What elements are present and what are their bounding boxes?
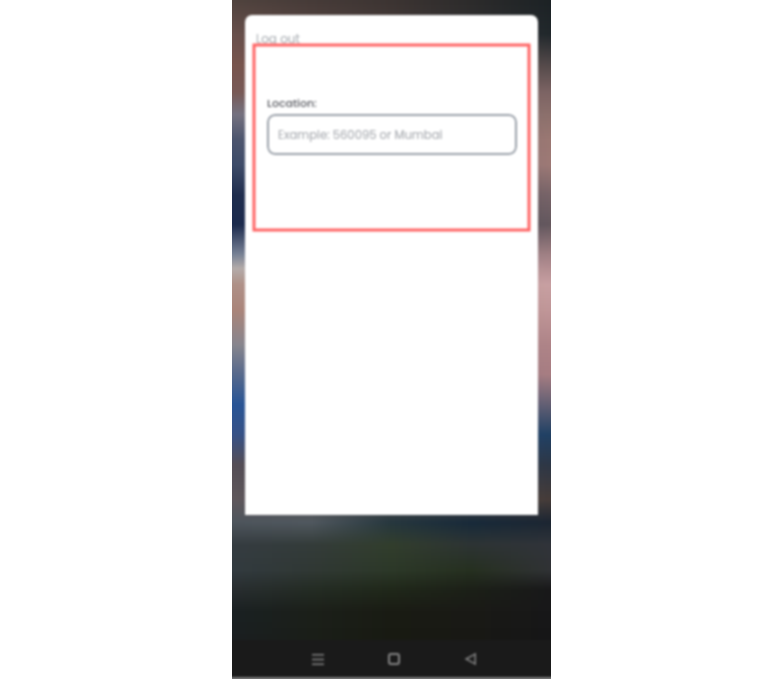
button[interactable]: Example: 560095 or Mumbai	[267, 114, 517, 155]
button[interactable]: Recent apps	[302, 643, 334, 675]
button[interactable]: Log out	[256, 30, 300, 47]
staticText: Location:	[267, 95, 317, 110]
button[interactable]: Home	[378, 643, 410, 675]
staticText: Example: 560095 or Mumbai	[278, 127, 443, 143]
button[interactable]: Back	[454, 643, 486, 675]
